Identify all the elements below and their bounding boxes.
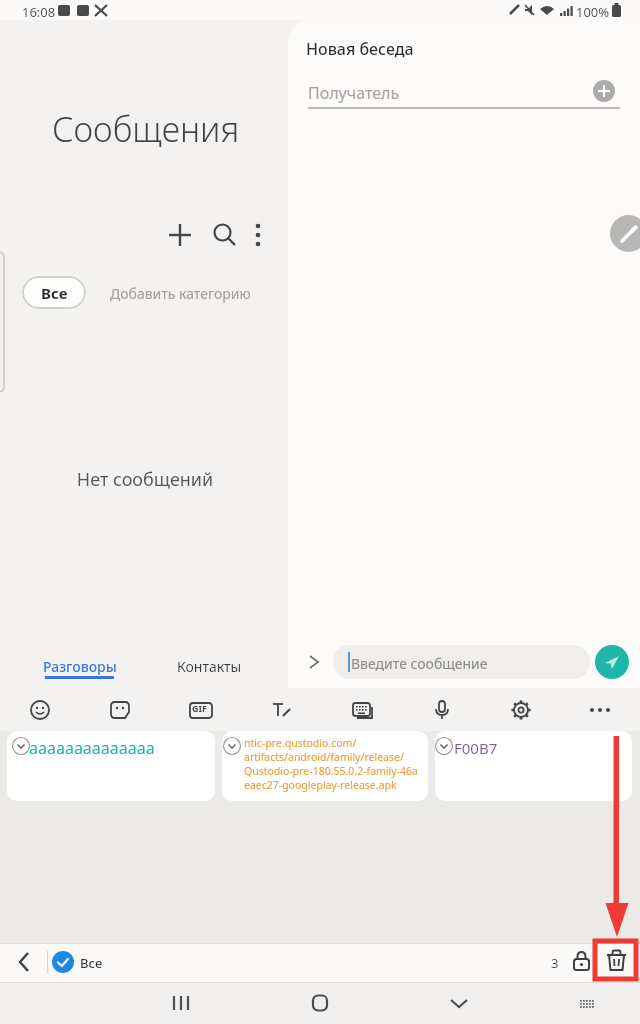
button[interactable]: Все xyxy=(22,276,86,309)
button[interactable] xyxy=(569,948,595,974)
staticText: 16:08 xyxy=(22,3,56,21)
button[interactable] xyxy=(266,695,296,725)
button[interactable]: F00B7 xyxy=(435,731,632,801)
button[interactable] xyxy=(185,695,215,725)
button[interactable] xyxy=(585,695,615,725)
staticText: Сообщения xyxy=(52,106,240,152)
button[interactable] xyxy=(10,948,38,976)
button[interactable] xyxy=(427,695,457,725)
button[interactable]: Введите сообщение xyxy=(333,645,590,679)
staticText: Новая беседа xyxy=(306,38,414,60)
button[interactable] xyxy=(299,988,341,1018)
staticText: 3 xyxy=(551,954,559,972)
button[interactable] xyxy=(506,695,536,725)
staticText: eaec27-googleplay-release.apk xyxy=(244,778,397,792)
button[interactable]: Контакты xyxy=(172,650,246,682)
button[interactable] xyxy=(166,221,194,249)
button[interactable] xyxy=(438,988,480,1018)
staticText: Разговоры xyxy=(43,657,117,676)
button[interactable] xyxy=(160,988,202,1018)
staticText: artifacts/android/family/release/ xyxy=(244,750,404,764)
staticText: Контакты xyxy=(177,657,242,676)
staticText: Qustodio-pre-180.55.0.2-family-46a xyxy=(244,764,418,778)
button[interactable]: Добавить категорию xyxy=(110,280,251,306)
button[interactable] xyxy=(246,221,270,245)
button[interactable] xyxy=(610,215,640,252)
button[interactable] xyxy=(25,695,55,725)
staticText: GIF xyxy=(192,702,207,714)
button[interactable]: ntic-pre.qustodio.com/ xyxy=(222,731,428,801)
button[interactable] xyxy=(210,221,238,249)
button[interactable] xyxy=(105,695,135,725)
staticText: Все xyxy=(41,283,68,303)
button[interactable]: Все xyxy=(50,948,110,976)
button[interactable] xyxy=(572,992,602,1016)
staticText: Добавить категорию xyxy=(110,284,251,303)
button[interactable] xyxy=(603,947,630,974)
button[interactable]: Разговоры xyxy=(40,650,120,682)
staticText: ntic-pre.qustodio.com/ xyxy=(244,736,357,750)
staticText: Все xyxy=(80,954,103,972)
staticText: 100% xyxy=(576,3,610,21)
button[interactable] xyxy=(347,695,377,725)
button[interactable]: aaaaaaaaaaaaaa xyxy=(7,731,215,801)
staticText: F00B7 xyxy=(454,738,498,758)
staticText: Нет сообщений xyxy=(0,467,290,492)
button[interactable] xyxy=(593,80,615,102)
staticText: Введите сообщение xyxy=(351,654,488,673)
button[interactable] xyxy=(595,645,629,679)
staticText: aaaaaaaaaaaaaa xyxy=(29,737,155,759)
staticText: Получатель xyxy=(308,82,400,104)
